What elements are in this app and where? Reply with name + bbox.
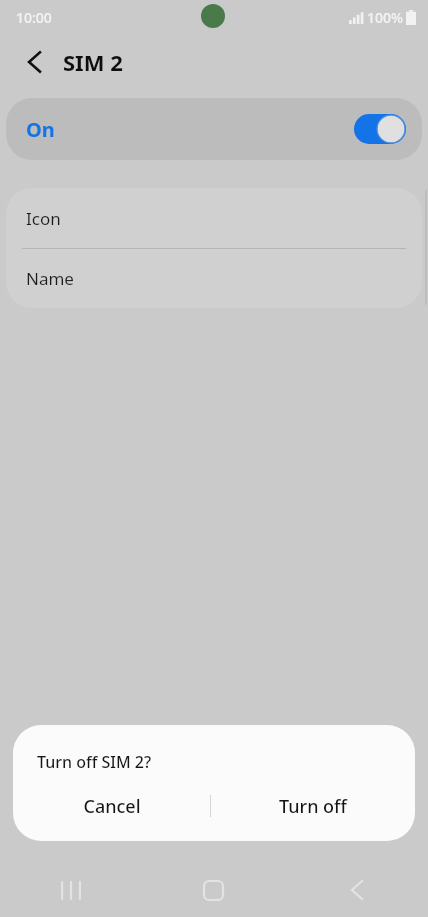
staticText: Icon [26, 207, 61, 230]
button[interactable]: Icon [6, 188, 422, 248]
button[interactable]: On [6, 98, 422, 160]
button[interactable]: Home [142, 863, 285, 917]
button[interactable]: Turn off [211, 783, 415, 829]
button[interactable]: Back [14, 42, 54, 82]
staticText: On [26, 116, 55, 143]
staticText: Turn off [279, 794, 347, 819]
staticText: Cancel [83, 794, 141, 819]
staticText: SIM 2 [63, 47, 123, 77]
staticText: Name [26, 267, 74, 290]
staticText: 10:00 [16, 8, 52, 27]
staticText: 100% [367, 8, 403, 27]
staticText: Turn off SIM 2? [37, 751, 152, 773]
button[interactable]: Name [6, 249, 422, 308]
button[interactable]: Cancel [13, 783, 210, 829]
